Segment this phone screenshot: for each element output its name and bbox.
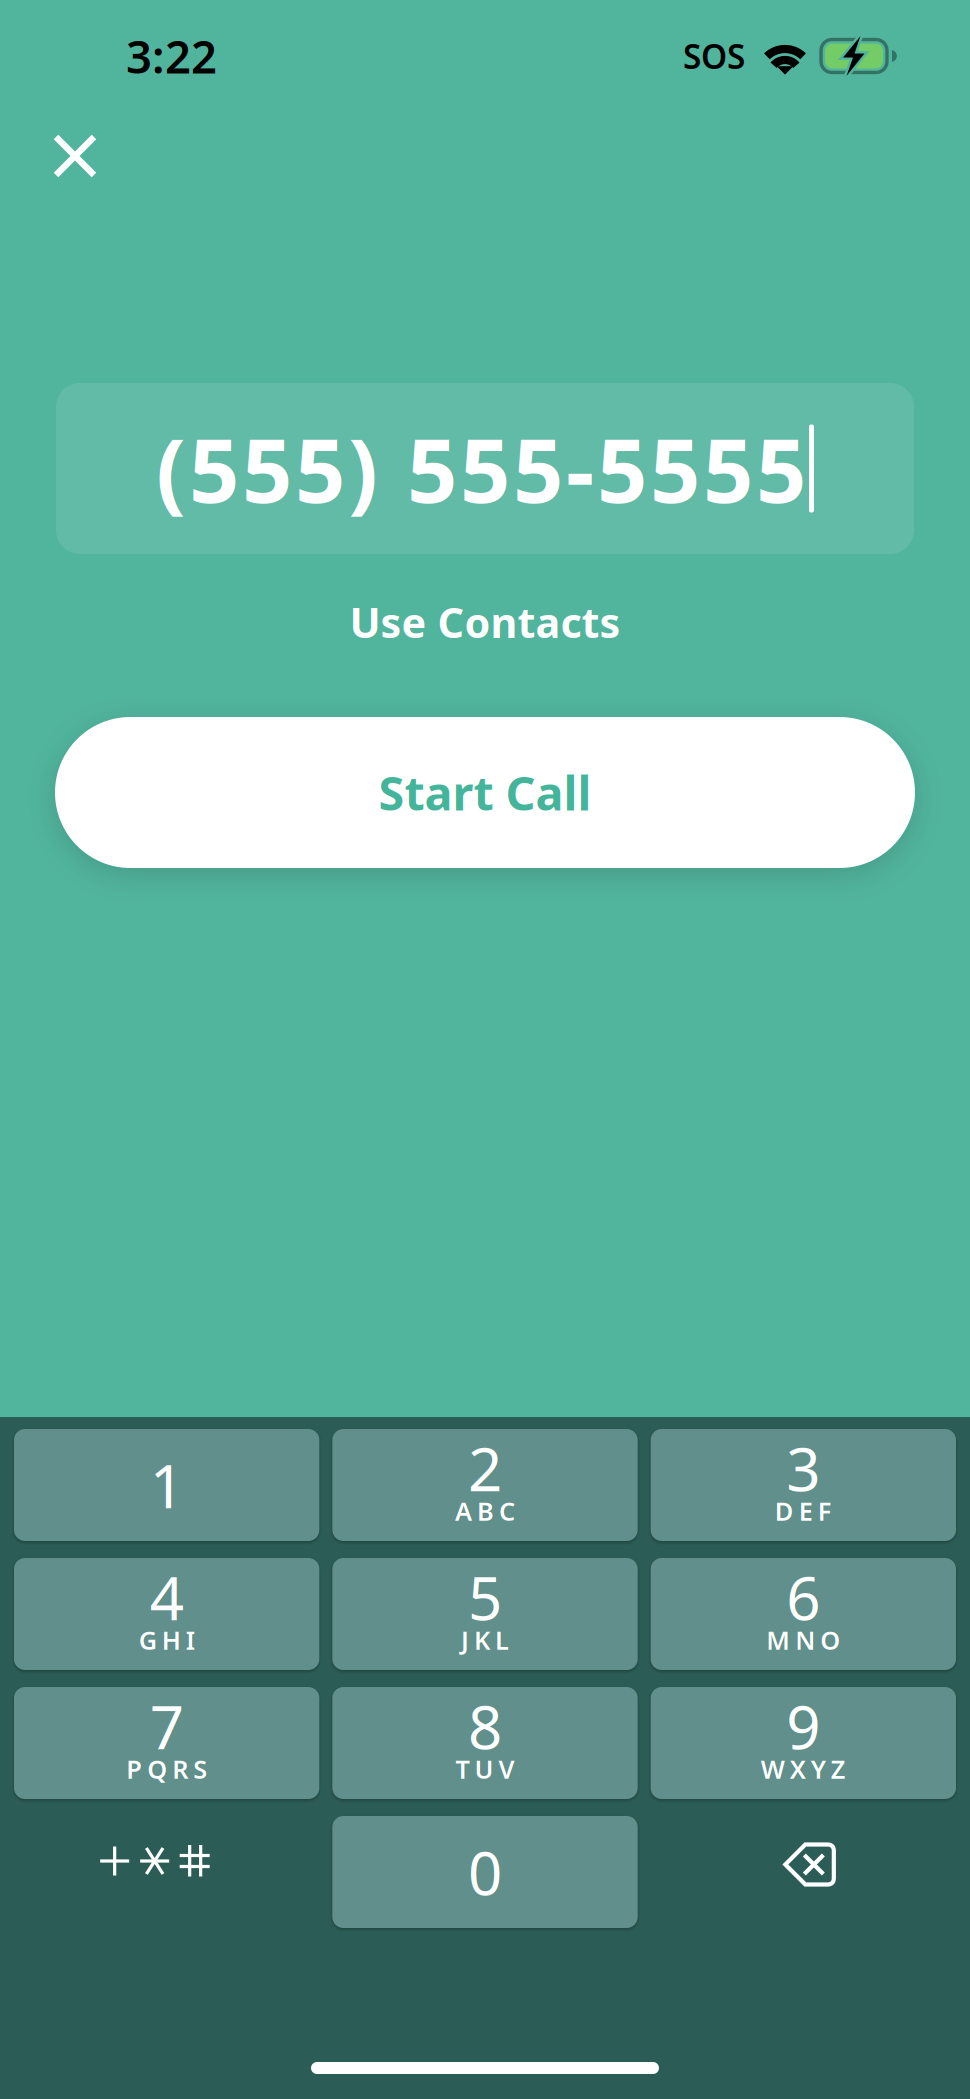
staticText: 7 bbox=[150, 1686, 184, 1766]
staticText: GHI bbox=[139, 1623, 195, 1657]
button[interactable]: 2 bbox=[332, 1429, 638, 1541]
button[interactable]: 0 bbox=[332, 1816, 638, 1928]
button[interactable]: 4 bbox=[14, 1558, 319, 1670]
button[interactable]: 3 bbox=[651, 1429, 956, 1541]
staticText: ABC bbox=[455, 1494, 515, 1528]
staticText: 5 bbox=[468, 1557, 502, 1637]
button[interactable]: Use Contacts bbox=[349, 594, 620, 650]
staticText: 3 bbox=[786, 1428, 820, 1508]
staticText: MNO bbox=[766, 1623, 840, 1657]
staticText: Start Call bbox=[378, 761, 591, 823]
staticText: 1 bbox=[150, 1445, 184, 1525]
staticText: Use Contacts bbox=[349, 595, 620, 649]
button[interactable]: Start Call bbox=[0, 717, 970, 868]
button[interactable]: Close bbox=[37, 112, 113, 188]
staticText: DEF bbox=[775, 1494, 832, 1528]
button[interactable]: 6 bbox=[651, 1558, 956, 1670]
staticText: 3:22 bbox=[126, 26, 217, 86]
staticText: PQRS bbox=[126, 1752, 207, 1786]
staticText: 0 bbox=[468, 1832, 502, 1912]
button[interactable]: Plus, star, hash bbox=[14, 1816, 319, 1928]
staticText: (555) 555-5555 bbox=[156, 410, 806, 527]
button[interactable]: 7 bbox=[14, 1687, 319, 1799]
button[interactable]: Delete bbox=[651, 1816, 956, 1928]
staticText: WXYZ bbox=[761, 1752, 846, 1786]
staticText: 4 bbox=[150, 1557, 184, 1637]
button[interactable]: 8 bbox=[332, 1687, 638, 1799]
staticText: 9 bbox=[786, 1686, 820, 1766]
button[interactable]: 9 bbox=[651, 1687, 956, 1799]
staticText: TUV bbox=[455, 1752, 514, 1786]
staticText: 8 bbox=[468, 1686, 502, 1766]
button[interactable]: 1 bbox=[14, 1429, 319, 1541]
staticText: JKL bbox=[461, 1623, 509, 1657]
staticText: 2 bbox=[468, 1428, 502, 1508]
staticText: 6 bbox=[786, 1557, 820, 1637]
button[interactable]: 5 bbox=[332, 1558, 638, 1670]
staticText: SOS bbox=[683, 34, 745, 78]
